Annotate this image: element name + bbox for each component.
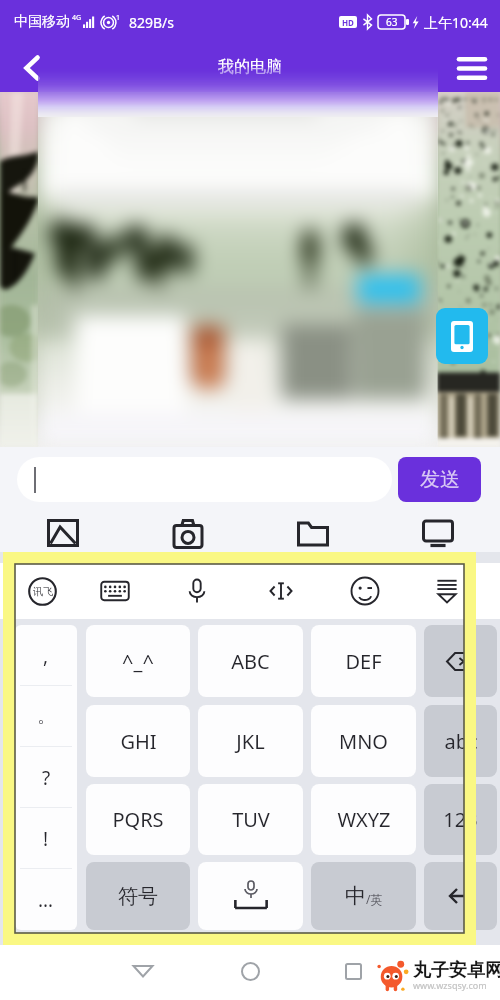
button[interactable]: ABC — [198, 625, 303, 697]
staticText: ! — [43, 826, 49, 852]
button[interactable]: ^_^ — [86, 625, 190, 697]
button[interactable]: Keyboard — [74, 563, 156, 619]
staticText: ? — [42, 765, 51, 791]
button[interactable]: ! — [15, 808, 77, 869]
staticText: HD — [342, 17, 354, 28]
button[interactable]: ? — [15, 747, 77, 808]
button[interactable]: , — [15, 625, 77, 686]
button[interactable]: JKL — [198, 705, 303, 777]
staticText: 1 — [116, 13, 121, 23]
staticText: 讯飞 — [33, 585, 53, 598]
staticText: ABC — [231, 648, 270, 675]
button[interactable]: Space — [198, 862, 303, 930]
staticText: 4G — [72, 13, 82, 23]
button[interactable]: 符号 — [86, 862, 190, 930]
button[interactable]: Cursor — [238, 563, 324, 619]
button[interactable]: Screen — [375, 516, 500, 550]
staticText: 。 — [37, 705, 55, 728]
staticText: 中 — [345, 883, 366, 909]
staticText: MNO — [339, 728, 388, 755]
button[interactable]: 发送 — [398, 457, 481, 502]
button[interactable]: Camera — [125, 516, 250, 550]
staticText: JKL — [236, 728, 265, 755]
staticText: TUV — [232, 806, 270, 833]
staticText: abc — [444, 728, 478, 755]
button[interactable]: Menu — [450, 46, 494, 90]
staticText: 上午10:44 — [424, 13, 488, 32]
staticText: 发送 — [420, 467, 460, 492]
staticText: DEF — [345, 648, 382, 675]
button[interactable]: PQRS — [86, 784, 190, 855]
button[interactable]: Delete — [424, 625, 497, 697]
button[interactable]: abc — [424, 705, 497, 777]
staticText: , — [43, 643, 49, 669]
button[interactable]: MNO — [311, 705, 416, 777]
button[interactable]: 。 — [15, 686, 77, 747]
button[interactable]: GHI — [86, 705, 190, 777]
staticText: 符号 — [118, 884, 158, 909]
staticText: WXYZ — [337, 806, 391, 833]
staticText: ^_^ — [122, 648, 154, 675]
button[interactable]: TUV — [198, 784, 303, 855]
button[interactable]: Recents — [333, 951, 373, 991]
button[interactable]: Files — [250, 516, 375, 550]
button[interactable]: Enter — [424, 862, 497, 930]
button[interactable]: Back — [123, 951, 163, 991]
staticText: … — [38, 887, 54, 913]
staticText: www.wzsqsy.com — [413, 979, 487, 991]
staticText: 我的电脑 — [218, 57, 282, 77]
staticText: 829B/s — [129, 13, 175, 32]
staticText: 丸子安卓网 — [413, 959, 500, 982]
button[interactable]: 中 — [311, 862, 416, 930]
staticText: 123 — [443, 806, 478, 833]
button[interactable]: Collapse — [406, 563, 488, 619]
button[interactable]: … — [15, 869, 77, 930]
button[interactable]: Voice — [156, 563, 238, 619]
button[interactable]: WXYZ — [311, 784, 416, 855]
button[interactable]: Input method — [11, 563, 74, 619]
staticText: PQRS — [112, 806, 164, 833]
button[interactable]: DEF — [311, 625, 416, 697]
button[interactable]: Gallery — [0, 516, 125, 550]
button[interactable]: Device — [436, 308, 488, 364]
staticText: /英 — [366, 891, 383, 907]
staticText: 63 — [386, 15, 398, 29]
staticText: GHI — [120, 728, 157, 755]
staticText: 中国移动 — [14, 13, 70, 31]
button[interactable]: Back — [10, 46, 54, 90]
button[interactable]: Home — [230, 951, 270, 991]
button[interactable]: Emoji — [324, 563, 406, 619]
button[interactable] — [17, 457, 392, 502]
button[interactable]: 123 — [424, 784, 497, 855]
